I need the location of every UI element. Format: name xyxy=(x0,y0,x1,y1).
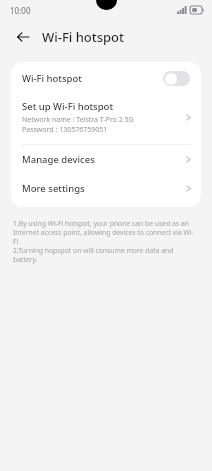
staticText: Wi-Fi hotspot xyxy=(22,72,82,85)
button[interactable]: Wi-Fi hotspot xyxy=(11,62,201,95)
staticText: More settings xyxy=(22,182,85,195)
staticText: 1.By using Wi-Fi hotspot, your phone can… xyxy=(13,219,199,246)
button[interactable]: Set up Wi-Fi hotspot xyxy=(11,95,201,144)
button[interactable]: More settings xyxy=(11,174,201,203)
button[interactable]: Wi-Fi hotspot toggle xyxy=(163,71,190,86)
staticText: Set up Wi-Fi hotspot xyxy=(22,100,114,113)
staticText: Password : 130576759051 xyxy=(22,125,108,135)
button[interactable]: Back xyxy=(12,26,34,48)
staticText: Manage devices xyxy=(22,153,95,166)
staticText: Network name : Telstra T-Pro 2 5G xyxy=(22,115,134,125)
staticText: 2.Turning hopspot on will consume more d… xyxy=(13,246,199,264)
staticText: 10:00 xyxy=(10,5,31,16)
button[interactable]: Manage devices xyxy=(11,145,201,174)
staticText: Wi-Fi hotspot xyxy=(42,28,125,46)
